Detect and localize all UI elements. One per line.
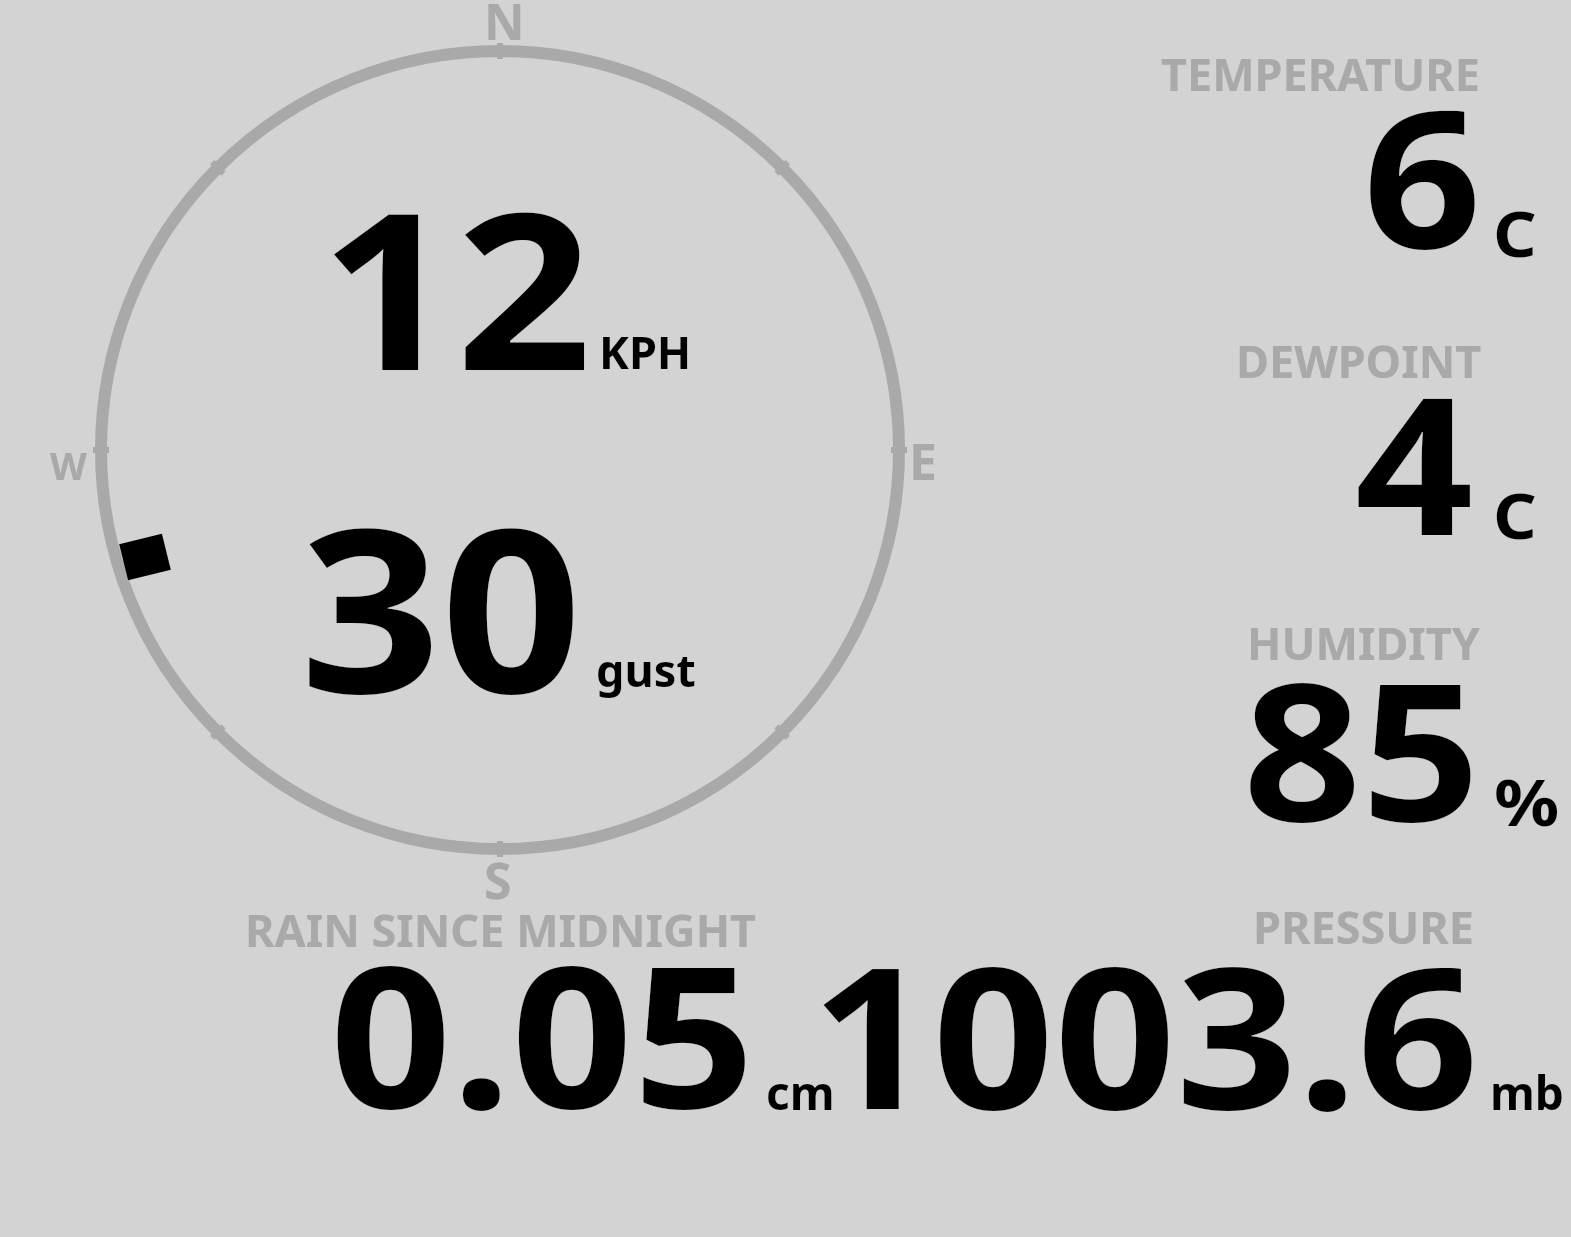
- staticText: 6: [1363, 45, 1482, 275]
- staticText: 1003.6: [811, 901, 1479, 1141]
- staticText: cm: [766, 1061, 835, 1124]
- staticText: 12: [320, 137, 592, 434]
- staticText: mb: [1490, 1061, 1564, 1124]
- staticText: C: [1493, 473, 1537, 557]
- button[interactable]: Rain since midnight 0.05 centimetres: [240, 890, 850, 1130]
- button[interactable]: Compass, wind from west south west: [40, 0, 960, 905]
- button[interactable]: Dewpoint 4 degrees Celsius: [1100, 325, 1571, 550]
- staticText: W: [50, 439, 87, 491]
- staticText: N: [484, 0, 525, 55]
- button[interactable]: Pressure 1003.6 millibars: [850, 890, 1571, 1130]
- staticText: KPH: [599, 321, 692, 382]
- staticText: gust: [596, 639, 696, 700]
- staticText: PRESSURE: [1253, 896, 1474, 957]
- staticText: 4: [1355, 332, 1474, 557]
- button[interactable]: Wind gust 30 kilometres per hour: [100, 440, 800, 730]
- staticText: RAIN SINCE MIDNIGHT: [245, 899, 757, 960]
- staticText: C: [1493, 191, 1537, 275]
- staticText: HUMIDITY: [1247, 612, 1480, 673]
- staticText: S: [484, 846, 512, 914]
- button[interactable]: Wind speed 12 kilometres per hour: [100, 120, 800, 440]
- staticText: DEWPOINT: [1236, 330, 1482, 391]
- staticText: 85: [1243, 618, 1481, 848]
- staticText: E: [909, 427, 937, 495]
- button[interactable]: Humidity 85 percent: [1100, 608, 1571, 838]
- button[interactable]: Temperature 6 degrees Celsius: [1100, 40, 1571, 270]
- staticText: 30: [300, 451, 582, 741]
- staticText: TEMPERATURE: [1161, 43, 1480, 104]
- staticText: 0.05: [330, 900, 755, 1140]
- staticText: %: [1494, 758, 1559, 845]
